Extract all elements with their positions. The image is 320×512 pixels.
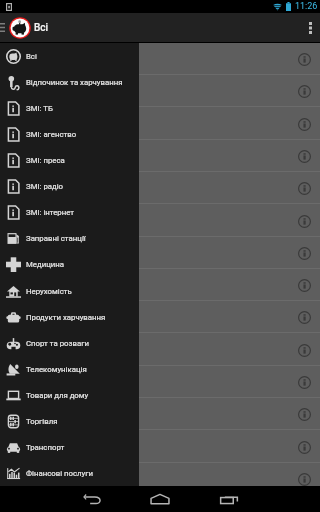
staticText: Спорт та розваги: [26, 339, 89, 348]
button[interactable]: Продукти харчування: [0, 304, 139, 330]
staticText: Медицина: [26, 260, 65, 269]
staticText: Продукти харчування: [26, 313, 106, 322]
staticText: Заправні станції: [26, 234, 86, 243]
staticText: Транспорт: [26, 443, 65, 452]
staticText: Всі: [34, 22, 49, 34]
staticText: Фінансові послуги: [26, 469, 93, 478]
button[interactable]: More options: [300, 13, 320, 42]
button[interactable]: ЗМІ: преса: [0, 147, 139, 173]
staticText: 11:26: [295, 1, 318, 12]
button[interactable]: Транспорт: [0, 434, 139, 460]
staticText: ЗМІ: агенство: [26, 130, 77, 139]
button[interactable]: ЗМІ: інтернет: [0, 199, 139, 225]
staticText: ЗМІ: інтернет: [26, 208, 75, 217]
staticText: Товари для дому: [26, 391, 89, 400]
staticText: Відпочинок та харчування: [26, 78, 123, 87]
button[interactable]: Open navigation drawer: [0, 13, 31, 42]
button[interactable]: ЗМІ: агенство: [0, 121, 139, 147]
staticText: Нерухомість: [26, 287, 72, 296]
button[interactable]: Recent apps: [209, 486, 249, 512]
button[interactable]: Телекомунікація: [0, 356, 139, 382]
button[interactable]: Спорт та розваги: [0, 330, 139, 356]
staticText: ЗМІ: радіо: [26, 182, 64, 191]
button[interactable]: Фінансові послуги: [0, 460, 139, 486]
button[interactable]: Відпочинок та харчування: [0, 69, 139, 95]
button[interactable]: Медицина: [0, 251, 139, 277]
button[interactable]: ЗМІ: радіо: [0, 173, 139, 199]
staticText: ЗМІ: преса: [26, 156, 65, 165]
button[interactable]: Нерухомість: [0, 278, 139, 304]
button[interactable]: ЗМІ: ТБ: [0, 95, 139, 121]
button[interactable]: Back: [72, 486, 112, 512]
button[interactable]: Товари для дому: [0, 382, 139, 408]
staticText: Торгівля: [26, 417, 58, 426]
button[interactable]: Home: [140, 486, 180, 512]
button[interactable]: Торгівля: [0, 408, 139, 434]
staticText: Всі: [26, 52, 37, 61]
button[interactable]: Всі: [0, 43, 139, 69]
staticText: ЗМІ: ТБ: [26, 104, 53, 113]
button[interactable]: Заправні станції: [0, 225, 139, 251]
staticText: Телекомунікація: [26, 365, 87, 374]
